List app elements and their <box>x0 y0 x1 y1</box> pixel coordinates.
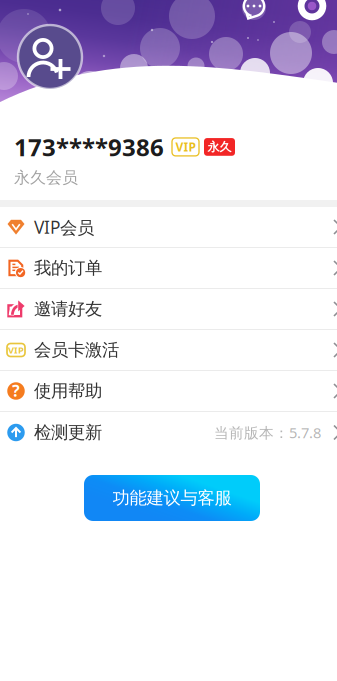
button[interactable]: 功能建议与客服 <box>84 475 260 521</box>
staticText: VIP <box>175 139 195 155</box>
staticText: 使用帮助 <box>34 380 102 402</box>
button[interactable]: Messages <box>240 0 268 21</box>
button[interactable]: 邀请好友 <box>0 289 337 330</box>
staticText: 邀请好友 <box>34 298 102 320</box>
button[interactable]: ? <box>0 371 337 412</box>
button[interactable]: Settings <box>298 0 326 21</box>
button[interactable]: 检测更新 <box>0 412 337 453</box>
staticText: 永久会员 <box>14 168 78 188</box>
button[interactable]: VIP会员 <box>0 207 337 248</box>
staticText: 173****9386 <box>14 131 164 163</box>
staticText: VIP会员 <box>34 215 94 238</box>
staticText: 检测更新 <box>34 422 102 443</box>
button[interactable]: VIP <box>0 330 337 371</box>
staticText: 当前版本：5.7.8 <box>214 423 321 442</box>
staticText: VIP <box>8 344 24 356</box>
staticText: 永久 <box>207 140 231 154</box>
staticText: ? <box>12 380 20 401</box>
staticText: 会员卡激活 <box>34 339 119 361</box>
staticText: 我的订单 <box>34 257 102 279</box>
staticText: 功能建议与客服 <box>112 487 231 509</box>
button[interactable]: 我的订单 <box>0 248 337 289</box>
